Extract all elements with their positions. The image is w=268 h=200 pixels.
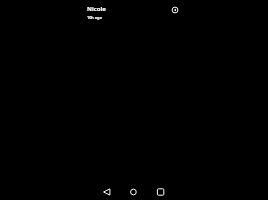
button[interactable]: Sound on [166,1,184,19]
button[interactable]: Home [123,181,143,200]
staticText: Nicole [87,5,106,13]
button[interactable]: Back [97,181,117,200]
button[interactable]: Recent apps [150,181,170,200]
staticText: 10h ago [87,15,102,20]
button[interactable]: Nicole [87,5,106,20]
